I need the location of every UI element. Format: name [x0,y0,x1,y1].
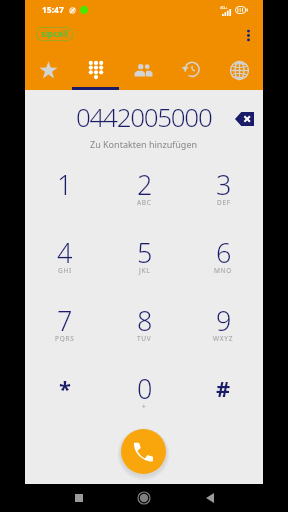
staticText: MNO [214,266,233,275]
staticText: WXYZ [213,334,234,343]
button[interactable]: 1 [25,154,105,222]
button[interactable]: Recents [67,486,91,510]
staticText: GHI [58,266,72,275]
staticText: DEF [217,198,231,207]
staticText: 4 [57,234,73,271]
button[interactable]: # [184,358,263,426]
staticText: * [59,373,71,403]
staticText: # [216,373,231,403]
staticText: sipcall [41,28,68,40]
button[interactable]: Web [215,48,263,90]
button[interactable]: 0 [105,358,184,426]
button[interactable]: More options [235,22,261,48]
staticText: 4G+ [220,5,228,10]
button[interactable]: Favourites [25,48,72,90]
button[interactable]: 7 [25,290,105,358]
button[interactable]: 8 [105,290,184,358]
staticText: 9 [216,302,232,339]
button[interactable]: sipcall [36,27,73,41]
button[interactable]: Dialpad [72,48,119,90]
staticText: 1 [57,166,73,203]
staticText: TUV [137,334,152,343]
button[interactable]: Call [121,429,166,474]
button[interactable]: 6 [184,222,263,290]
staticText: Zu Kontakten hinzufügen [90,138,198,150]
staticText: + [142,402,147,411]
staticText: 7 [57,302,73,339]
staticText: 8 [137,302,153,339]
button[interactable]: 9 [184,290,263,358]
staticText: PQRS [55,334,75,343]
staticText: 3 [216,166,232,203]
button[interactable]: 2 [105,154,184,222]
staticText: 6 [216,234,232,271]
button[interactable]: 3 [184,154,263,222]
button[interactable]: Backspace [229,104,259,134]
button[interactable]: History [167,48,215,90]
staticText: ABC [137,198,152,207]
button[interactable]: Back [198,486,222,510]
staticText: 0442005000 [76,99,212,134]
button[interactable]: Home [132,486,156,510]
button[interactable]: 5 [105,222,184,290]
staticText: 15:47 [42,4,64,16]
staticText: 0 [137,370,153,407]
button[interactable]: * [25,358,105,426]
button[interactable]: 4 [25,222,105,290]
button[interactable]: Contacts [119,48,167,90]
staticText: JKL [139,266,151,275]
staticText: 5 [137,234,153,271]
staticText: 2 [137,166,153,203]
